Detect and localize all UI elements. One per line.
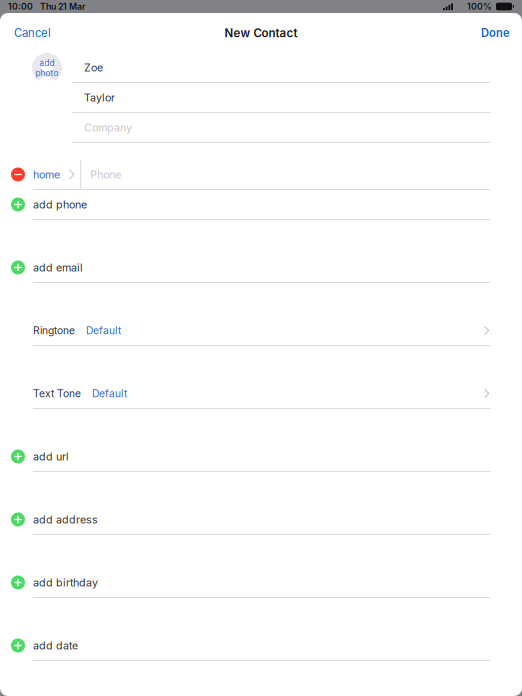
staticText: add phone [33,198,87,211]
staticText: 100% [467,1,492,12]
staticText: Thu 21 Mar [40,1,85,12]
button[interactable]: home [0,160,522,190]
button[interactable]: Cancel [0,13,65,53]
staticText: Default [86,324,121,337]
button[interactable]: add birthday [0,568,522,598]
staticText: add birthday [33,576,98,589]
button[interactable]: Done [469,13,522,53]
staticText: Ringtone [33,324,75,337]
staticText: 10:00 [8,1,33,12]
staticText: add [39,58,54,68]
staticText: Phone [90,168,121,181]
staticText: Cancel [14,26,51,40]
button[interactable]: Text Tone [0,379,522,409]
staticText: add email [33,261,83,274]
button[interactable]: add date [0,631,522,661]
button[interactable]: Ringtone [0,316,522,346]
staticText: add address [33,513,98,526]
staticText: photo [35,68,58,78]
staticText: Text Tone [33,387,81,400]
staticText: Taylor [84,91,115,104]
staticText: New Contact [224,26,297,40]
button[interactable]: add url [0,442,522,472]
staticText: add url [33,450,69,463]
button[interactable]: Add photo [0,53,72,83]
staticText: Done [481,26,510,40]
staticText: Default [92,387,127,400]
button[interactable]: add address [0,505,522,535]
staticText: add date [33,639,78,652]
staticText: Company [84,121,132,134]
staticText: Zoe [84,61,103,74]
button[interactable]: add email [0,253,522,283]
button[interactable]: add phone [0,190,522,220]
staticText: home [33,168,60,181]
